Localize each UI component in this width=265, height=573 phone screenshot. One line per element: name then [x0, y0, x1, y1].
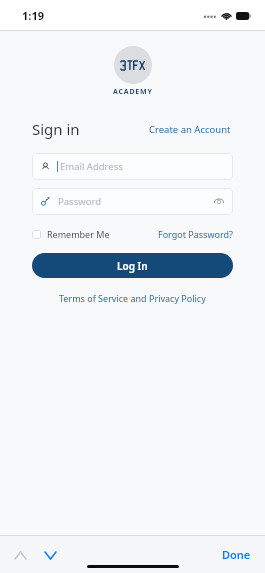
button[interactable]: Previous field — [12, 547, 28, 563]
staticText: 1:19 — [22, 8, 44, 23]
staticText: Terms of Service and Privacy Policy — [59, 292, 206, 304]
button[interactable]: Create an Account — [147, 121, 233, 138]
button[interactable]: Done — [222, 547, 251, 562]
button[interactable]: Forgot Password? — [158, 225, 233, 243]
button[interactable]: Show password — [213, 196, 224, 207]
staticText: Forgot Password? — [158, 228, 233, 240]
button[interactable]: Log In — [32, 253, 233, 278]
button[interactable]: Terms of Service and Privacy Policy — [0, 292, 265, 304]
staticText: Sign in — [32, 119, 80, 139]
button[interactable]: Next field — [42, 547, 58, 563]
staticText: Create an Account — [149, 123, 231, 136]
staticText: ACADEMY — [113, 87, 153, 97]
staticText: Remember Me — [47, 228, 110, 240]
staticText: Email Address — [60, 160, 123, 173]
staticText: Done — [222, 547, 251, 562]
staticText: Password — [58, 195, 101, 208]
button[interactable]: Remember Me — [32, 225, 110, 243]
staticText: Log In — [117, 259, 148, 273]
button[interactable]: Email Address — [32, 153, 233, 180]
button[interactable]: Password — [32, 188, 233, 215]
